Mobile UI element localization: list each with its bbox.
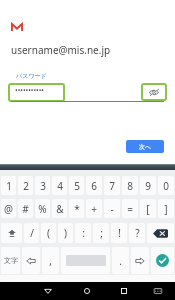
button[interactable]: 3 [35,176,50,195]
button[interactable]: 7 [104,176,120,195]
staticText: パスワード [16,72,47,80]
button[interactable]: * [69,199,84,218]
staticText: username@mis.ne.jp [11,43,111,57]
button[interactable]: Shift [1,223,22,243]
button[interactable]: Space [61,247,110,274]
staticText: ? [135,226,140,240]
staticText: : [82,226,85,240]
staticText: 6 [91,179,97,193]
button[interactable]: 次へ [126,140,164,153]
staticText: 3 [40,179,46,193]
staticText: 7 [109,179,115,193]
button[interactable]: ? [129,223,145,243]
button[interactable]: : [75,223,91,243]
button[interactable]: . [112,247,129,274]
button[interactable]: 文字 [1,247,20,274]
staticText: ••••••••••• [15,86,44,96]
button[interactable]: Keyboard [149,282,167,300]
button[interactable]: 5 [69,176,84,195]
button[interactable]: 4 [52,176,67,195]
button[interactable]: [ [140,199,156,218]
button[interactable]: Backspace [147,223,174,243]
button[interactable]: - [104,199,120,218]
button[interactable]: # [18,199,33,218]
button[interactable]: ] [158,199,174,218]
staticText: ; [100,226,103,240]
staticText: / [30,226,34,240]
button[interactable]: 6 [86,176,102,195]
staticText: ( [47,226,50,240]
staticText: ! [118,226,121,240]
button[interactable]: % [35,199,50,218]
staticText: 4 [57,179,63,193]
button[interactable]: Enter [151,247,174,274]
staticText: % [38,202,47,216]
staticText: 1 [6,179,12,193]
staticText: 2 [23,179,29,193]
button[interactable]: 9 [140,176,156,195]
button[interactable]: Home [78,282,96,300]
staticText: * [74,202,80,216]
button[interactable]: Recents [115,282,133,300]
button[interactable]: ; [93,223,109,243]
button[interactable]: ! [111,223,127,243]
staticText: + [91,202,97,216]
staticText: . [119,254,122,268]
button[interactable]: 8 [122,176,138,195]
button[interactable]: , [42,247,59,274]
staticText: ] [164,202,168,216]
staticText: 5 [74,179,80,193]
staticText: # [22,202,29,216]
button[interactable]: / [24,223,39,243]
button[interactable]: + [86,199,102,218]
button[interactable]: @ [1,199,16,218]
staticText: = [127,202,133,216]
staticText: ) [64,226,67,240]
button[interactable]: Symbols [22,247,40,274]
staticText: 次へ [139,143,152,151]
staticText: & [56,202,64,216]
staticText: 9 [145,179,151,193]
staticText: [ [146,202,150,216]
button[interactable]: Next [131,247,149,274]
button[interactable]: ( [41,223,56,243]
staticText: @ [4,202,13,216]
staticText: , [49,254,52,268]
button[interactable]: 1 [1,176,16,195]
button[interactable]: ) [58,223,73,243]
button[interactable]: 2 [18,176,33,195]
button[interactable]: & [52,199,67,218]
button[interactable]: 0 [158,176,174,195]
button[interactable]: = [122,199,138,218]
staticText: 文字 [4,256,18,265]
button[interactable]: Show password [141,83,167,101]
button[interactable]: Back [39,282,57,300]
staticText: 0 [163,179,169,193]
staticText: 8 [127,179,133,193]
staticText: - [110,202,114,216]
